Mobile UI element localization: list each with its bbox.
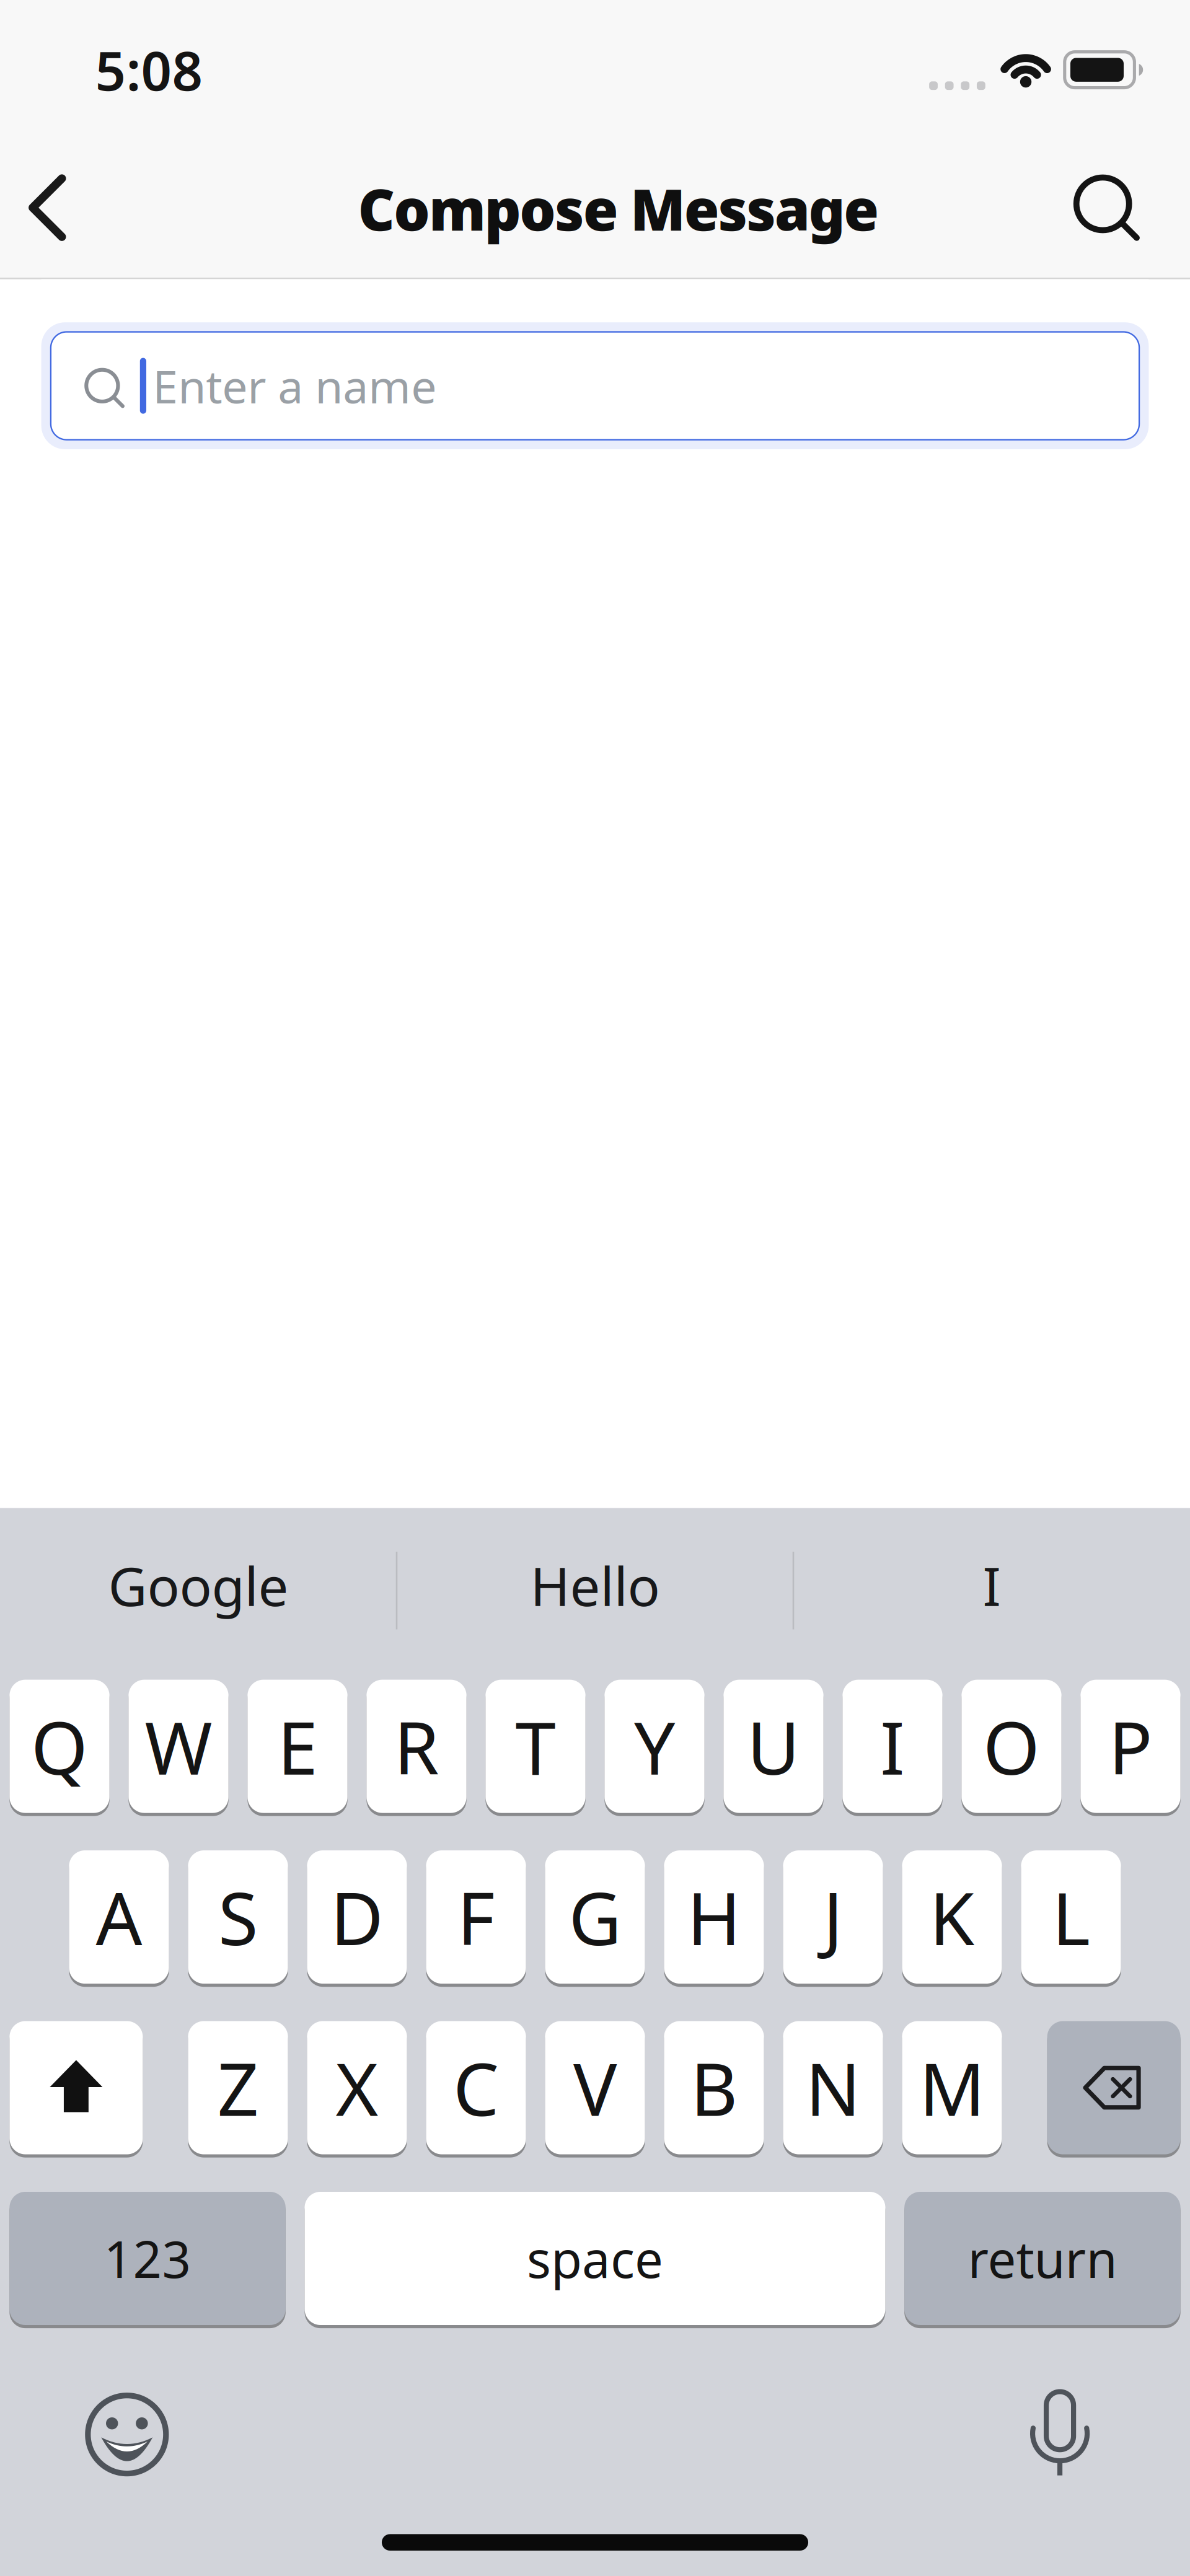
staticText: H bbox=[687, 1869, 741, 1965]
button[interactable]: Hello bbox=[397, 1508, 793, 1678]
button[interactable]: B bbox=[664, 2020, 764, 2156]
button[interactable]: U bbox=[724, 1678, 824, 1815]
staticText: C bbox=[453, 2039, 499, 2136]
button[interactable]: K bbox=[902, 1849, 1002, 1985]
button[interactable]: G bbox=[545, 1849, 645, 1985]
staticText: A bbox=[96, 1869, 142, 1965]
staticText: I bbox=[983, 1550, 1001, 1621]
button[interactable]: A bbox=[69, 1849, 169, 1985]
staticText: M bbox=[919, 2039, 985, 2136]
button[interactable]: M bbox=[902, 2020, 1002, 2156]
staticText: Google bbox=[108, 1550, 289, 1621]
button[interactable]: T bbox=[486, 1678, 586, 1815]
staticText: 123 bbox=[104, 2225, 191, 2292]
staticText: U bbox=[747, 1698, 800, 1795]
button[interactable]: N bbox=[783, 2020, 883, 2156]
button[interactable]: H bbox=[664, 1849, 764, 1985]
staticText: N bbox=[805, 2039, 861, 2136]
staticText: L bbox=[1052, 1869, 1090, 1965]
staticText: Z bbox=[217, 2039, 259, 2136]
button[interactable]: O bbox=[962, 1678, 1062, 1815]
button[interactable]: E bbox=[248, 1678, 348, 1815]
staticText: P bbox=[1108, 1698, 1153, 1795]
button[interactable]: R bbox=[367, 1678, 467, 1815]
staticText: F bbox=[457, 1869, 495, 1965]
button[interactable]: C bbox=[426, 2020, 526, 2156]
staticText: W bbox=[145, 1698, 212, 1795]
staticText: G bbox=[569, 1869, 621, 1965]
staticText: 5:08 bbox=[95, 34, 203, 105]
button[interactable]: Search bbox=[1073, 174, 1190, 243]
staticText: Y bbox=[634, 1698, 675, 1795]
button[interactable]: I bbox=[793, 1508, 1190, 1678]
button[interactable]: Shift bbox=[10, 2020, 143, 2156]
staticText: return bbox=[968, 2225, 1117, 2292]
staticText: J bbox=[823, 1869, 843, 1965]
button[interactable]: Dictate bbox=[1019, 2392, 1101, 2477]
staticText: D bbox=[330, 1869, 384, 1965]
staticText: B bbox=[690, 2039, 738, 2136]
staticText: V bbox=[573, 2039, 617, 2136]
staticText: O bbox=[983, 1698, 1040, 1795]
button[interactable]: X bbox=[307, 2020, 407, 2156]
staticText: S bbox=[218, 1869, 258, 1965]
button[interactable]: Y bbox=[605, 1678, 705, 1815]
button[interactable]: V bbox=[545, 2020, 645, 2156]
staticText: space bbox=[527, 2225, 663, 2292]
button[interactable]: D bbox=[307, 1849, 407, 1985]
button[interactable]: Delete bbox=[1047, 2020, 1180, 2156]
staticText: K bbox=[929, 1869, 975, 1965]
staticText: Q bbox=[31, 1698, 88, 1795]
button[interactable]: Google bbox=[0, 1508, 397, 1678]
button[interactable]: 123 bbox=[10, 2190, 286, 2327]
button[interactable]: J bbox=[783, 1849, 883, 1985]
button[interactable]: S bbox=[188, 1849, 288, 1985]
button[interactable]: Z bbox=[188, 2020, 288, 2156]
button[interactable]: W bbox=[129, 1678, 229, 1815]
button[interactable]: Back bbox=[0, 161, 92, 256]
button[interactable]: L bbox=[1021, 1849, 1121, 1985]
staticText: E bbox=[277, 1698, 318, 1795]
button[interactable]: I bbox=[843, 1678, 943, 1815]
staticText: X bbox=[336, 2039, 378, 2136]
button[interactable]: P bbox=[1081, 1678, 1181, 1815]
button[interactable]: Enter a name bbox=[41, 322, 1149, 449]
staticText: T bbox=[515, 1698, 556, 1795]
staticText: R bbox=[394, 1698, 439, 1795]
staticText: Hello bbox=[530, 1550, 660, 1621]
button[interactable]: Emoji bbox=[84, 2392, 170, 2477]
button[interactable]: space bbox=[305, 2190, 885, 2327]
staticText: Enter a name bbox=[153, 356, 437, 416]
button[interactable]: return bbox=[904, 2190, 1180, 2327]
button[interactable]: F bbox=[426, 1849, 526, 1985]
staticText: I bbox=[880, 1698, 905, 1795]
button[interactable]: Q bbox=[10, 1678, 110, 1815]
staticText: Compose Message bbox=[358, 171, 879, 247]
